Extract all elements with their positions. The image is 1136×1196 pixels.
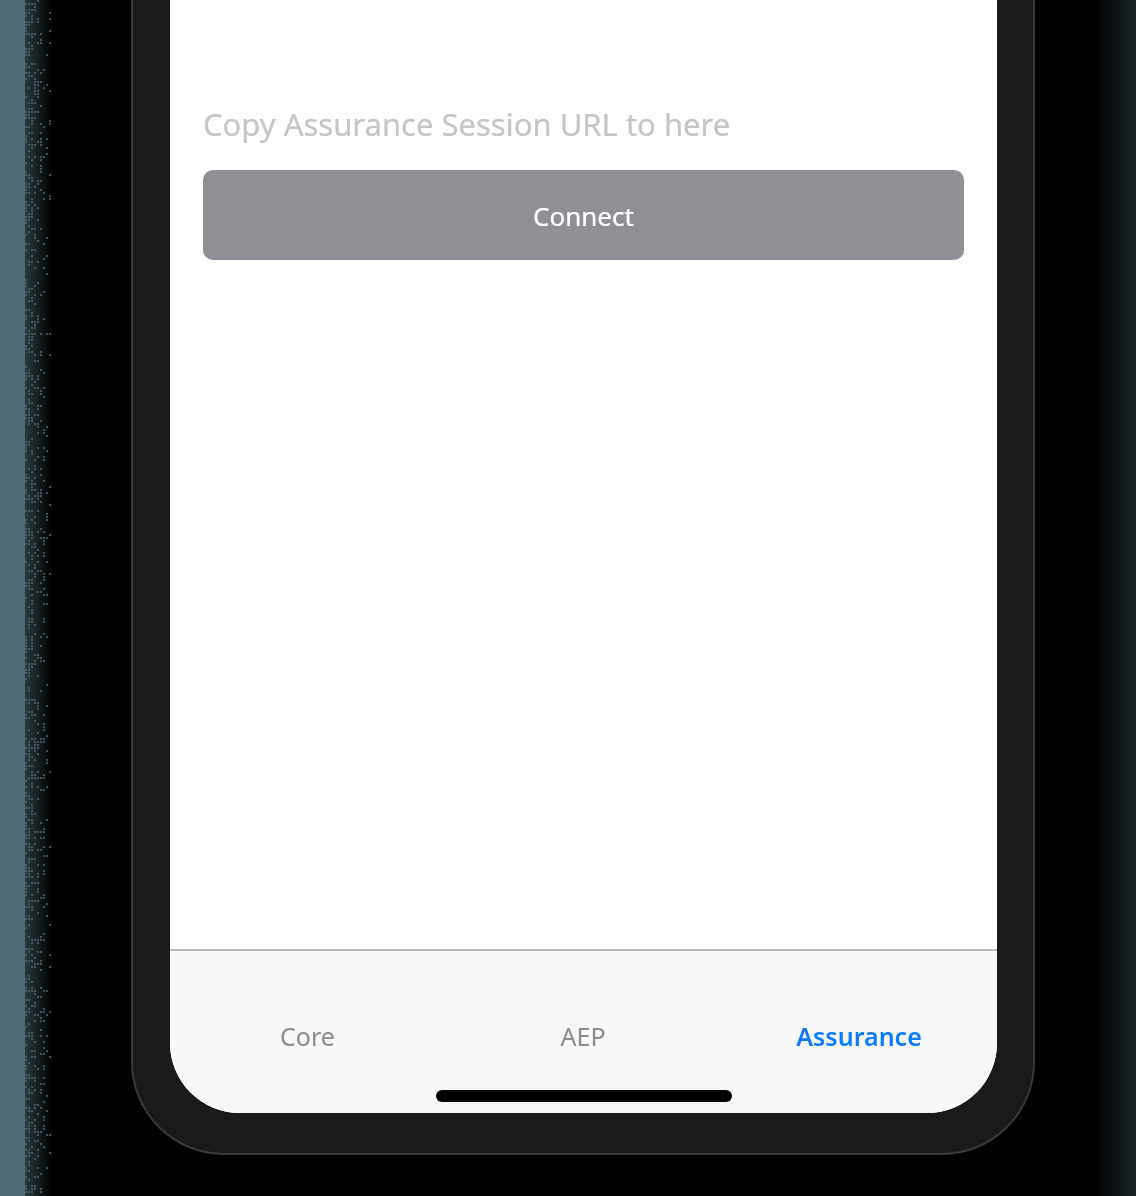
staticText: Assurance [796, 1019, 922, 1053]
button[interactable]: Copy Assurance Session URL to here [203, 103, 964, 143]
button[interactable]: AEP [445, 1016, 721, 1056]
button[interactable]: Connect [203, 170, 964, 260]
staticText: Copy Assurance Session URL to here [203, 103, 731, 143]
button[interactable]: Assurance [721, 1016, 997, 1056]
button[interactable]: Core [170, 1016, 445, 1056]
staticText: Connect [533, 198, 634, 233]
staticText: AEP [560, 1019, 606, 1053]
staticText: Core [280, 1019, 335, 1053]
